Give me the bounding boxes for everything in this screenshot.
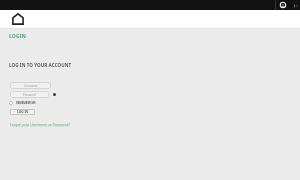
button[interactable]: Show password	[51, 91, 57, 97]
button[interactable]: LOG IN	[10, 109, 35, 115]
staticText: LOGIN	[9, 33, 27, 40]
button[interactable]: Home	[10, 11, 26, 27]
button[interactable]: Password	[10, 91, 49, 98]
staticText: Password	[23, 93, 36, 97]
button[interactable]: Forgot your Username or Password?	[10, 122, 70, 127]
staticText: Username	[24, 84, 38, 88]
button[interactable]: Profile	[280, 2, 286, 8]
button[interactable]: More options	[293, 3, 298, 8]
staticText: LOG IN	[17, 110, 29, 114]
button[interactable]: REMEMBER ME	[9, 100, 36, 105]
button[interactable]: Username	[10, 82, 51, 89]
staticText: REMEMBER ME	[16, 101, 36, 105]
button[interactable]: LOGIN	[9, 33, 27, 40]
staticText: Forgot your Username or Password?	[10, 122, 70, 127]
staticText: LOG IN TO YOUR ACCOUNT	[9, 62, 72, 68]
